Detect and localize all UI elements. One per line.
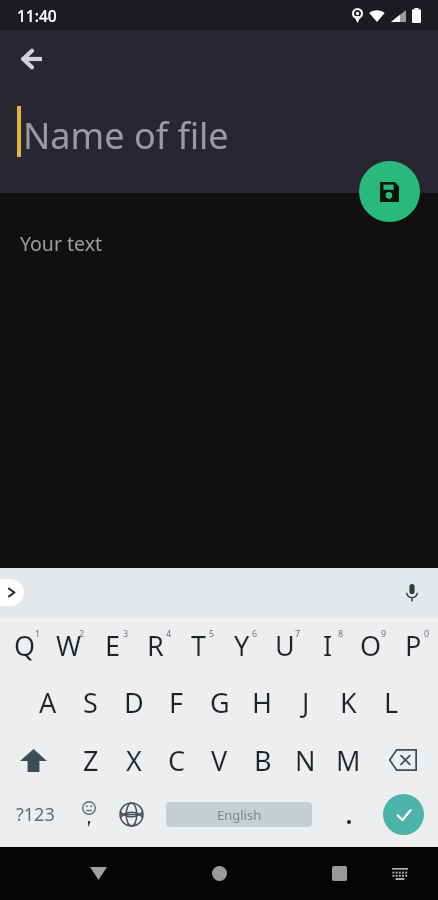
button[interactable]: O: [349, 617, 392, 674]
staticText: 8: [338, 627, 344, 639]
button[interactable]: Q: [3, 617, 47, 674]
button[interactable]: [329, 785, 368, 843]
staticText: Q: [14, 627, 36, 664]
button[interactable]: English: [166, 802, 312, 827]
staticText: L: [384, 684, 399, 721]
button[interactable]: J: [284, 674, 327, 731]
button[interactable]: Emoji: [64, 785, 114, 843]
button[interactable]: W: [47, 617, 91, 674]
button[interactable]: H: [241, 674, 284, 731]
button[interactable]: Expand suggestions: [0, 579, 24, 606]
button[interactable]: R: [134, 617, 177, 674]
staticText: X: [126, 742, 142, 779]
staticText: W: [56, 627, 82, 664]
button[interactable]: C: [155, 731, 198, 789]
button[interactable]: Change language: [114, 785, 149, 843]
button[interactable]: A: [26, 674, 69, 731]
staticText: Z: [83, 742, 99, 779]
staticText: 9: [381, 627, 387, 639]
button[interactable]: X: [112, 731, 155, 789]
button[interactable]: N: [284, 731, 327, 789]
staticText: 5: [209, 627, 215, 639]
staticText: F: [169, 684, 184, 721]
staticText: J: [302, 684, 310, 721]
staticText: B: [254, 742, 272, 779]
button[interactable]: S: [69, 674, 112, 731]
button[interactable]: E: [91, 617, 134, 674]
staticText: 11:40: [17, 5, 57, 26]
staticText: E: [105, 627, 121, 664]
button[interactable]: P: [392, 617, 435, 674]
button[interactable]: L: [370, 674, 413, 731]
button[interactable]: T: [177, 617, 220, 674]
staticText: 2: [79, 627, 85, 639]
staticText: K: [340, 684, 357, 721]
staticText: N: [295, 742, 316, 779]
staticText: 3: [123, 627, 129, 639]
staticText: H: [252, 684, 273, 721]
button[interactable]: K: [327, 674, 370, 731]
staticText: I: [323, 627, 333, 664]
staticText: Y: [234, 627, 250, 664]
staticText: 0: [424, 627, 430, 639]
button[interactable]: Save: [359, 161, 420, 222]
button[interactable]: Switch keyboard: [378, 847, 422, 900]
button[interactable]: Y: [220, 617, 263, 674]
staticText: R: [147, 627, 164, 664]
staticText: Your text: [20, 230, 103, 257]
staticText: C: [168, 742, 186, 779]
button[interactable]: Home: [195, 847, 243, 900]
button[interactable]: I: [306, 617, 349, 674]
staticText: A: [39, 684, 57, 721]
button[interactable]: Backspace: [370, 731, 435, 789]
staticText: O: [360, 627, 382, 664]
staticText: U: [275, 627, 295, 664]
button[interactable]: U: [263, 617, 306, 674]
staticText: S: [83, 684, 98, 721]
button[interactable]: Back: [74, 847, 122, 900]
staticText: 4: [166, 627, 172, 639]
button[interactable]: V: [198, 731, 241, 789]
staticText: Name of file: [23, 111, 229, 160]
button[interactable]: B: [241, 731, 284, 789]
button[interactable]: F: [155, 674, 198, 731]
staticText: T: [191, 627, 207, 664]
button[interactable]: Z: [69, 731, 112, 789]
button[interactable]: D: [112, 674, 155, 731]
staticText: 6: [252, 627, 258, 639]
button[interactable]: Enter: [383, 794, 424, 835]
button[interactable]: Back: [14, 41, 50, 77]
staticText: 7: [295, 627, 301, 639]
staticText: M: [336, 742, 361, 779]
button[interactable]: M: [327, 731, 370, 789]
staticText: V: [211, 742, 228, 779]
staticText: G: [210, 684, 230, 721]
button[interactable]: ?123: [0, 785, 64, 843]
button[interactable]: G: [198, 674, 241, 731]
staticText: 1: [35, 627, 41, 639]
button[interactable]: Recent apps: [315, 847, 363, 900]
button[interactable]: Shift: [3, 731, 69, 789]
staticText: P: [405, 627, 422, 664]
staticText: ?123: [16, 802, 55, 827]
staticText: English: [217, 806, 262, 824]
button[interactable]: Voice input: [397, 578, 427, 608]
staticText: D: [124, 684, 144, 721]
